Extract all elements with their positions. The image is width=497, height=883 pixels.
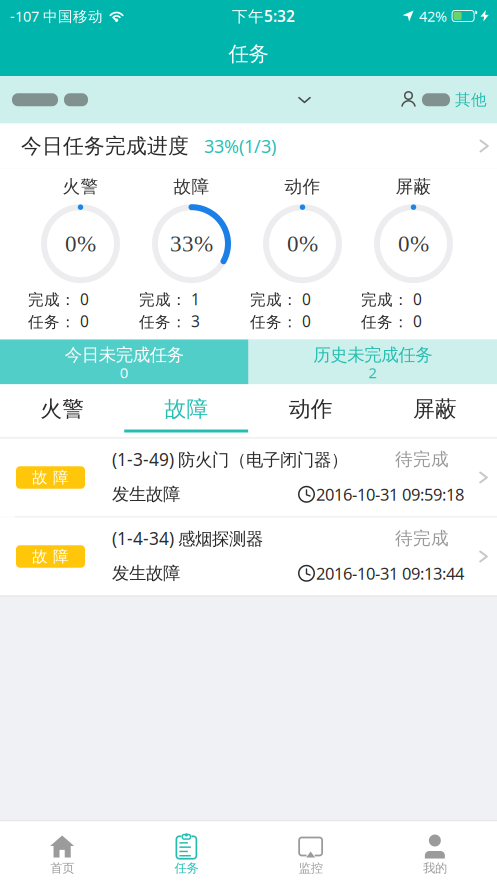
staticText: 42% xyxy=(419,6,447,26)
button[interactable]: 今日未完成任务 xyxy=(0,339,248,384)
staticText: 0% xyxy=(65,231,96,256)
button[interactable]: 我的 xyxy=(373,821,497,883)
staticText: (1-3-49) 防火门（电子闭门器） xyxy=(112,447,348,471)
staticText: (1-4-34) 感烟探测器 xyxy=(112,526,263,550)
staticText: 2016-10-31 09:13:44 xyxy=(316,562,464,585)
button[interactable]: 故障 xyxy=(124,384,248,437)
staticText: 故 障 xyxy=(32,468,69,487)
staticText: 完成： 0 xyxy=(361,289,422,310)
staticText: 今日任务完成进度 xyxy=(21,133,189,159)
button[interactable]: 监控 xyxy=(248,821,373,883)
staticText: 火警 xyxy=(40,395,84,423)
staticText: 故 障 xyxy=(32,547,69,566)
staticText: 33% xyxy=(170,231,213,256)
button[interactable]: 故 障 xyxy=(0,438,497,516)
staticText: 0% xyxy=(287,231,318,256)
staticText: 任务： 3 xyxy=(139,311,200,332)
staticText: 2016-10-31 09:59:18 xyxy=(316,483,464,506)
staticText: 下午5:32 xyxy=(232,5,295,26)
button[interactable]: 故 障 xyxy=(0,517,497,595)
staticText: 任务： 0 xyxy=(361,311,422,332)
staticText: 33%(1/3) xyxy=(204,134,276,158)
staticText: 发生故障 xyxy=(112,483,180,505)
staticText: 我的 xyxy=(423,860,447,876)
staticText: 完成： 0 xyxy=(250,289,311,310)
staticText: 故障 xyxy=(164,395,208,423)
staticText: 任务： 0 xyxy=(28,311,89,332)
staticText: 今日未完成任务 xyxy=(65,344,184,366)
button[interactable]: 选择单位 xyxy=(0,93,311,106)
button[interactable]: 任务 xyxy=(124,821,248,883)
button[interactable]: 历史未完成任务 xyxy=(248,339,497,384)
staticText: 动作 xyxy=(289,395,333,423)
button[interactable]: 首页 xyxy=(0,821,124,883)
staticText: 0% xyxy=(398,231,429,256)
staticText: 其他 xyxy=(455,90,487,110)
button[interactable]: 动作 xyxy=(248,384,373,437)
staticText: 2 xyxy=(368,362,377,383)
staticText: 完成： 1 xyxy=(139,289,200,310)
staticText: 任务 xyxy=(174,860,198,876)
staticText: -107 中国移动 xyxy=(10,6,103,26)
staticText: 首页 xyxy=(50,860,74,876)
button[interactable]: 今日任务完成进度 xyxy=(0,123,497,168)
staticText: 完成： 0 xyxy=(28,289,89,310)
staticText: 屏蔽 xyxy=(395,175,431,198)
staticText: 历史未完成任务 xyxy=(313,344,432,366)
staticText: 火警 xyxy=(62,175,98,198)
staticText: 屏蔽 xyxy=(413,395,457,423)
staticText: 0 xyxy=(120,362,129,383)
staticText: 动作 xyxy=(284,175,320,198)
button[interactable]: 火警 xyxy=(0,384,124,437)
staticText: 发生故障 xyxy=(112,562,180,584)
staticText: 待完成 xyxy=(395,448,449,470)
staticText: 任务： 0 xyxy=(250,311,311,332)
button[interactable]: 其他用户 xyxy=(400,90,497,110)
staticText: 任务 xyxy=(228,41,268,67)
button[interactable]: 屏蔽 xyxy=(373,384,497,437)
staticText: 监控 xyxy=(299,860,323,876)
staticText: 故障 xyxy=(173,175,209,198)
staticText: 待完成 xyxy=(395,527,449,549)
